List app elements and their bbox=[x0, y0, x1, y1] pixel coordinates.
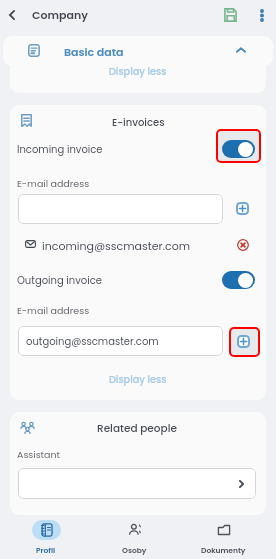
staticText: Display less bbox=[109, 373, 167, 387]
staticText: Osoby bbox=[122, 545, 147, 555]
button[interactable]: Back bbox=[2, 5, 22, 25]
button[interactable]: Osoby bbox=[90, 516, 179, 555]
button[interactable]: Display less bbox=[10, 366, 266, 394]
staticText: Related people bbox=[97, 421, 177, 436]
staticText: Profil bbox=[36, 545, 56, 555]
staticText: E-mail address bbox=[17, 177, 90, 190]
button[interactable]: Toggle bbox=[222, 271, 255, 289]
button[interactable]: outgoing@sscmaster.com bbox=[18, 326, 223, 356]
button[interactable]: Add e-mail address bbox=[237, 335, 250, 348]
staticText: Company bbox=[32, 7, 88, 22]
staticText: Outgoing invoice bbox=[17, 273, 102, 287]
button[interactable]: Add e-mail address bbox=[236, 202, 249, 215]
staticText: Incoming invoice bbox=[17, 142, 103, 156]
button[interactable] bbox=[3, 36, 273, 66]
button[interactable]: Remove e-mail address bbox=[234, 236, 251, 253]
staticText: incoming@sscmaster.com bbox=[42, 238, 191, 253]
staticText: Assistant bbox=[17, 448, 61, 461]
button[interactable]: Dokumenty bbox=[179, 516, 268, 555]
staticText: E-invoices bbox=[112, 115, 165, 129]
staticText: E-mail address bbox=[17, 304, 90, 317]
staticText: Dokumenty bbox=[201, 545, 246, 555]
staticText: Basic data bbox=[64, 44, 124, 59]
button[interactable]: Profil bbox=[2, 516, 90, 555]
button[interactable]: Assistant bbox=[18, 468, 256, 499]
button[interactable]: Save bbox=[220, 5, 240, 25]
staticText: outgoing@sscmaster.com bbox=[26, 334, 159, 348]
button[interactable]: More options bbox=[252, 5, 272, 25]
button[interactable]: Toggle bbox=[222, 140, 255, 158]
button[interactable]: Display less bbox=[10, 60, 266, 93]
button[interactable] bbox=[18, 194, 223, 224]
staticText: Display less bbox=[109, 65, 167, 79]
